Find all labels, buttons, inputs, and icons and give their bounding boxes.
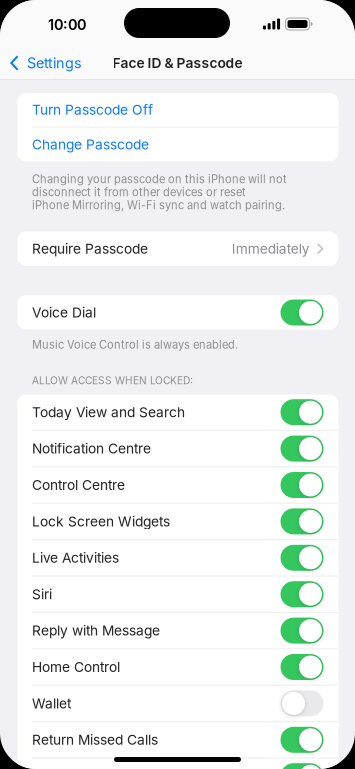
staticText: Live Activities (32, 549, 119, 566)
button[interactable]: Wallet (17, 686, 338, 721)
button[interactable]: Settings (0, 46, 90, 80)
staticText: 10:00 (48, 16, 86, 33)
staticText: Change Passcode (32, 136, 149, 153)
button[interactable]: Turn Passcode Off (17, 93, 338, 127)
staticText: Wallet (32, 695, 71, 712)
button[interactable]: Siri (17, 576, 338, 612)
staticText: Siri (32, 586, 52, 602)
staticText: Notification Centre (32, 440, 151, 457)
staticText: Return Missed Calls (32, 731, 158, 748)
staticText: Reply with Message (32, 622, 160, 639)
staticText: Lock Screen Widgets (32, 513, 170, 530)
staticText: disconnect it from other devices or rese… (32, 185, 246, 199)
staticText: Immediately (232, 240, 310, 257)
button[interactable]: Home Control (17, 649, 338, 685)
button[interactable]: Accessories (17, 758, 338, 769)
staticText: Home Control (32, 659, 120, 675)
button[interactable]: Require Passcode (17, 231, 338, 266)
button[interactable]: Voice Dial (17, 295, 338, 330)
staticText: Face ID & Passcode (112, 55, 242, 71)
staticText: Changing your passcode on this iPhone wi… (32, 172, 287, 186)
staticText: Today View and Search (32, 404, 185, 420)
staticText: Control Centre (32, 477, 125, 493)
staticText: Settings (27, 54, 82, 72)
staticText: Turn Passcode Off (32, 101, 153, 118)
staticText: Music Voice Control is always enabled. (32, 338, 238, 351)
staticText: ALLOW ACCESS WHEN LOCKED: (32, 374, 193, 387)
staticText: iPhone Mirroring, Wi-Fi sync and watch p… (32, 198, 285, 212)
staticText: Require Passcode (32, 240, 148, 257)
button[interactable]: Notification Centre (17, 431, 338, 466)
button[interactable]: Change Passcode (17, 128, 338, 161)
button[interactable]: Today View and Search (17, 394, 338, 430)
button[interactable]: Lock Screen Widgets (17, 504, 338, 539)
staticText: Voice Dial (32, 304, 96, 321)
button[interactable]: Return Missed Calls (17, 722, 338, 757)
button[interactable]: Reply with Message (17, 613, 338, 648)
button[interactable]: Live Activities (17, 540, 338, 575)
button[interactable]: Control Centre (17, 467, 338, 503)
